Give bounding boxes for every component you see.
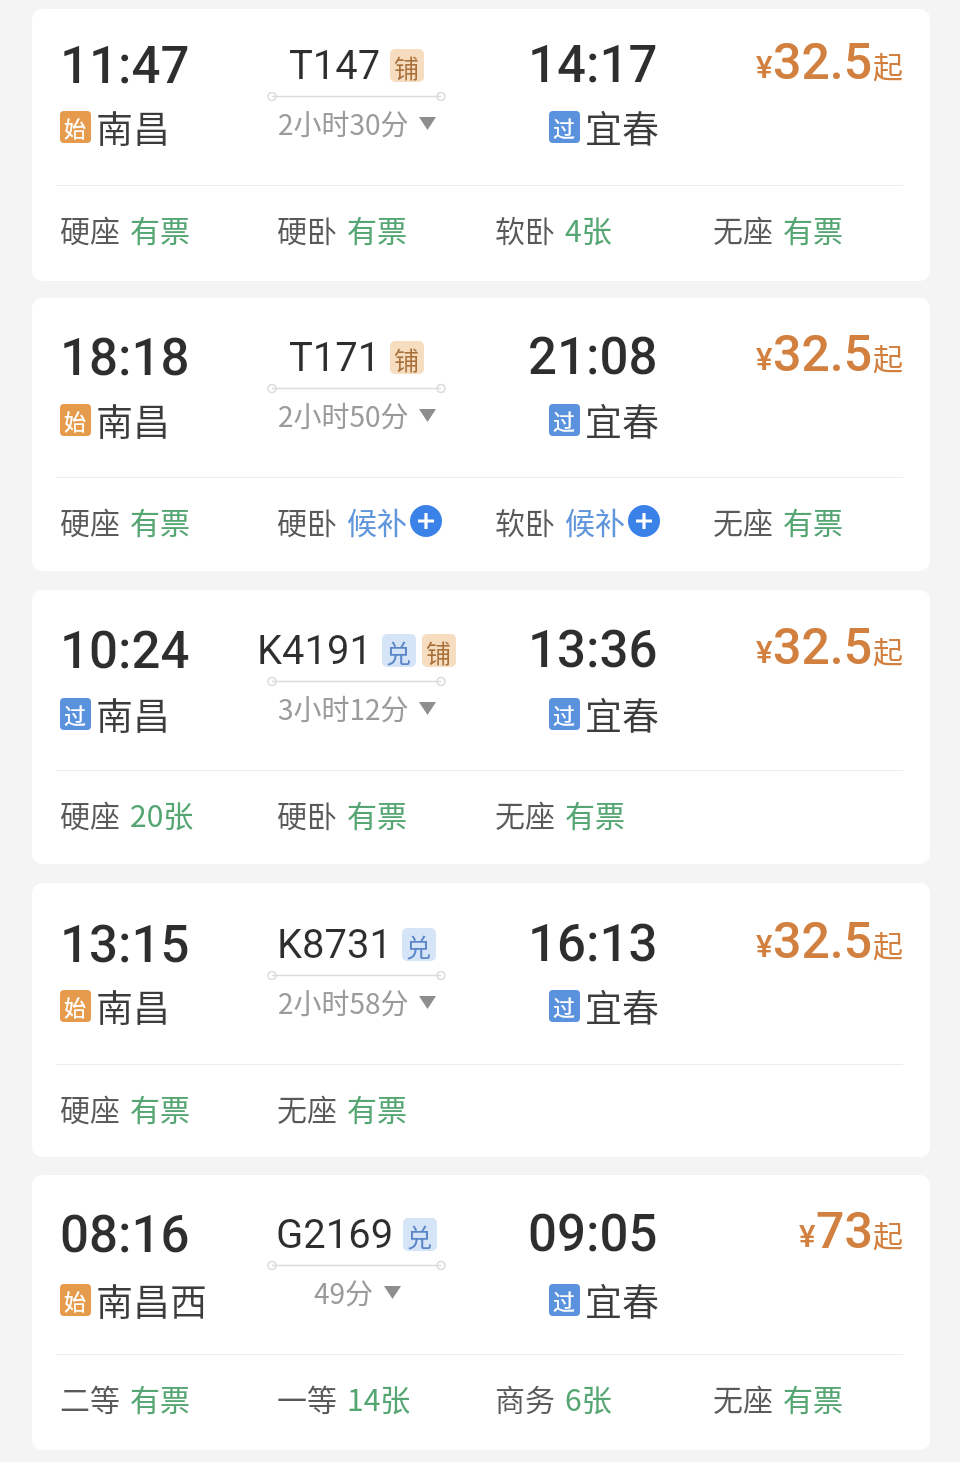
staticText: G2169 [276,1211,394,1258]
staticText: 硬座 [60,207,120,250]
staticText: 二等 [60,1376,120,1419]
staticText: 有票 [130,207,190,250]
staticText: ¥ [756,341,773,377]
staticText: 有票 [783,499,843,542]
button[interactable]: 11:47 [32,9,930,281]
staticText: 宜春 [585,979,659,1033]
staticText: 09:05 [528,1204,658,1264]
staticText: 过 [64,698,87,730]
staticText: 候补 [347,499,407,542]
staticText: 南昌 [96,979,170,1033]
button[interactable]: 08:16 [32,1175,930,1450]
staticText: 宜春 [585,393,659,447]
staticText: 无座 [713,207,773,250]
staticText: 有票 [130,1376,190,1419]
staticText: 有票 [783,1376,843,1419]
staticText: 南昌 [96,100,170,154]
staticText: 49分 [314,1272,374,1313]
staticText: 过 [553,1284,576,1316]
staticText: 商务 [495,1376,555,1419]
staticText: 起 [873,1212,903,1255]
staticText: 铺 [426,634,452,667]
staticText: 宜春 [585,687,659,741]
staticText: 32.5 [773,325,873,384]
staticText: 候补 [565,499,625,542]
staticText: 4张 [565,207,612,250]
staticText: T147 [289,42,381,89]
staticText: 硬座 [60,1086,120,1129]
staticText: 无座 [713,499,773,542]
staticText: 13:15 [60,915,190,975]
staticText: 一等 [277,1376,337,1419]
staticText: ¥ [799,1218,816,1254]
staticText: 始 [64,404,87,436]
staticText: 有票 [783,207,843,250]
staticText: 10:24 [60,621,190,681]
staticText: 16:13 [528,914,658,974]
other: Add to waitlist [628,505,660,537]
staticText: 18:18 [60,328,190,388]
staticText: ¥ [756,49,773,85]
staticText: 南昌 [96,393,170,447]
staticText: 3小时12分 [278,688,409,729]
staticText: 13:36 [528,620,658,680]
button[interactable]: 13:15 [32,883,930,1157]
staticText: 铺 [394,341,420,374]
staticText: 软卧 [495,207,555,250]
staticText: 南昌西 [96,1273,207,1327]
staticText: 73 [816,1202,873,1261]
staticText: 14张 [347,1376,411,1419]
staticText: 起 [873,628,903,671]
staticText: ¥ [756,634,773,670]
staticText: 始 [64,111,87,143]
staticText: 硬座 [60,499,120,542]
staticText: 兑 [407,1218,433,1251]
staticText: 无座 [713,1376,773,1419]
staticText: 起 [873,43,903,86]
staticText: 有票 [347,1086,407,1129]
staticText: 兑 [386,634,412,667]
staticText: 宜春 [585,1273,659,1327]
staticText: 起 [873,335,903,378]
staticText: 硬座 [60,792,120,835]
staticText: 2小时30分 [278,103,409,144]
staticText: 有票 [347,792,407,835]
staticText: 有票 [347,207,407,250]
staticText: 20张 [130,792,194,835]
staticText: 21:08 [528,327,658,387]
staticText: 过 [553,404,576,436]
staticText: K8731 [277,921,393,968]
staticText: 始 [64,1284,87,1316]
staticText: 32.5 [773,912,873,971]
staticText: 铺 [394,49,420,82]
staticText: 有票 [130,1086,190,1129]
staticText: 过 [553,990,576,1022]
staticText: 软卧 [495,499,555,542]
staticText: 无座 [277,1086,337,1129]
button[interactable]: 18:18 [32,298,930,571]
staticText: 11:47 [60,36,190,96]
button[interactable]: 10:24 [32,590,930,864]
staticText: 6张 [565,1376,612,1419]
staticText: 过 [553,698,576,730]
staticText: 起 [873,922,903,965]
staticText: 宜春 [585,100,659,154]
staticText: 14:17 [528,35,658,95]
staticText: 始 [64,990,87,1022]
staticText: ¥ [756,928,773,964]
staticText: 硬卧 [277,792,337,835]
staticText: 08:16 [60,1205,190,1265]
staticText: T171 [289,334,381,381]
staticText: 硬卧 [277,207,337,250]
staticText: 过 [553,111,576,143]
staticText: 硬卧 [277,499,337,542]
staticText: 有票 [565,792,625,835]
staticText: 32.5 [773,33,873,92]
staticText: K4191 [257,627,373,674]
staticText: 兑 [406,928,432,961]
staticText: 2小时50分 [278,395,409,436]
other: Add to waitlist [410,505,442,537]
staticText: 2小时58分 [278,982,409,1023]
staticText: 有票 [130,499,190,542]
staticText: 无座 [495,792,555,835]
